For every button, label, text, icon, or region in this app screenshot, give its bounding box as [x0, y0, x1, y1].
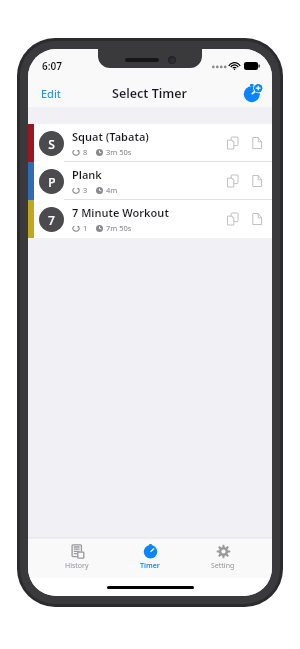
staticText: 1 [83, 223, 88, 233]
button[interactable]: Setting [197, 542, 249, 573]
staticText: 6:07 [42, 59, 62, 73]
staticText: 3 [83, 185, 88, 195]
staticText: Timer [140, 561, 160, 571]
staticText: Select Timer [112, 85, 188, 102]
button[interactable]: P [28, 162, 272, 200]
button[interactable]: Export [247, 205, 267, 233]
staticText: 7 Minute Workout [72, 205, 169, 220]
button[interactable]: 7 [28, 200, 272, 238]
button[interactable]: Timer [126, 542, 174, 573]
staticText: P [48, 174, 56, 190]
staticText: 4m [106, 185, 118, 195]
button[interactable]: Duplicate [222, 205, 243, 233]
staticText: Setting [211, 561, 235, 571]
staticText: Edit [41, 86, 61, 101]
button[interactable]: S [28, 124, 272, 162]
staticText: 7 [48, 212, 55, 228]
button[interactable]: Export [247, 129, 267, 157]
button[interactable]: Duplicate [222, 167, 243, 195]
staticText: Squat (Tabata) [72, 129, 149, 144]
staticText: 7m 50s [106, 223, 132, 233]
staticText: History [65, 561, 89, 571]
staticText: Plank [72, 167, 102, 182]
button[interactable]: Export [247, 167, 267, 195]
staticText: 8 [83, 147, 88, 157]
button[interactable]: Duplicate [222, 129, 243, 157]
staticText: S [48, 136, 55, 152]
staticText: 3m 50s [106, 147, 132, 157]
button[interactable]: Add timer [242, 82, 264, 104]
button[interactable]: Edit [28, 81, 74, 106]
button[interactable]: History [51, 542, 103, 573]
